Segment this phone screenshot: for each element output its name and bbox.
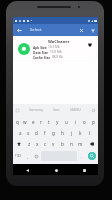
staticText: Apk Size [33, 45, 47, 49]
staticText: i [75, 119, 77, 125]
staticText: Data Size [33, 50, 49, 54]
staticText: w [23, 119, 27, 125]
button[interactable]: e [29, 116, 37, 127]
staticText: f [44, 130, 46, 136]
staticText: z [28, 141, 31, 147]
staticText: d [35, 130, 38, 136]
button[interactable]: i [71, 116, 80, 127]
button[interactable]: g [49, 127, 58, 138]
button[interactable]: , [24, 151, 32, 161]
staticText: s [27, 130, 30, 136]
button[interactable]: ?123 [13, 151, 24, 161]
button[interactable]: l [85, 127, 94, 138]
staticText: o [83, 119, 86, 125]
staticText: m [78, 141, 83, 147]
button[interactable]: j [67, 127, 76, 138]
staticText: Samsung [29, 108, 43, 112]
button[interactable]: f [40, 127, 49, 138]
staticText: 12.0 Mb [50, 50, 62, 54]
staticText: r [40, 119, 42, 125]
button[interactable]: Backspace [85, 138, 98, 149]
button[interactable]: z [25, 138, 33, 149]
staticText: . [81, 154, 83, 159]
staticText: Select [30, 27, 42, 33]
staticText: n [70, 141, 73, 147]
button[interactable]: k [76, 127, 85, 138]
button[interactable]: m [76, 138, 85, 149]
button[interactable]: b [58, 138, 67, 149]
staticText: j [71, 130, 73, 136]
button[interactable]: Settings [91, 108, 96, 113]
button[interactable]: y [53, 116, 62, 127]
button[interactable]: h [58, 127, 67, 138]
button[interactable]: w [21, 116, 29, 127]
button[interactable]: c [41, 138, 49, 149]
staticText: k [79, 130, 82, 136]
button[interactable]: o [80, 116, 89, 127]
button[interactable]: Back [14, 25, 25, 36]
staticText: p [92, 119, 95, 125]
staticText: x [36, 141, 39, 147]
button[interactable]: a [16, 127, 24, 138]
staticText: c [44, 141, 47, 147]
staticText: a [19, 130, 22, 136]
staticText: , [27, 154, 29, 159]
staticText: h [61, 130, 64, 136]
button[interactable]: x [33, 138, 41, 149]
staticText: q [16, 119, 19, 125]
staticText: 15.3 Mb [48, 45, 60, 49]
staticText: y [56, 119, 59, 125]
button[interactable]: WaCleaner [15, 37, 96, 60]
button[interactable]: Emoji [32, 151, 40, 161]
staticText: Sam [53, 108, 60, 112]
staticText: WaCleaner [48, 39, 70, 44]
button[interactable]: Back [22, 165, 32, 175]
button[interactable]: d [32, 127, 40, 138]
staticText: t [48, 119, 50, 125]
button[interactable]: Clipboard [15, 108, 20, 113]
button[interactable]: Close [76, 25, 87, 36]
button[interactable]: Sort [87, 25, 98, 36]
button[interactable]: r [37, 116, 45, 127]
staticText: Cache Size [33, 55, 51, 59]
button[interactable]: p [89, 116, 98, 127]
button[interactable]: Search [88, 152, 96, 160]
button[interactable]: q [13, 116, 21, 127]
staticText: e [32, 119, 35, 125]
button[interactable]: Shift [13, 138, 25, 149]
staticText: 88.0 Kb [52, 55, 63, 59]
button[interactable]: u [62, 116, 71, 127]
button[interactable]: v [49, 138, 58, 149]
staticText: ?123 [15, 154, 22, 158]
button[interactable]: n [67, 138, 76, 149]
button[interactable]: t [45, 116, 53, 127]
staticText: SAMSU [70, 108, 81, 112]
button[interactable]: Home [51, 165, 61, 175]
staticText: u [65, 119, 68, 125]
button[interactable]: Recents [79, 165, 89, 175]
staticText: b [61, 141, 64, 147]
button[interactable]: Favorite [85, 37, 94, 60]
staticText: l [89, 130, 91, 136]
button[interactable]: s [24, 127, 32, 138]
staticText: g [52, 130, 55, 136]
staticText: v [52, 141, 55, 147]
